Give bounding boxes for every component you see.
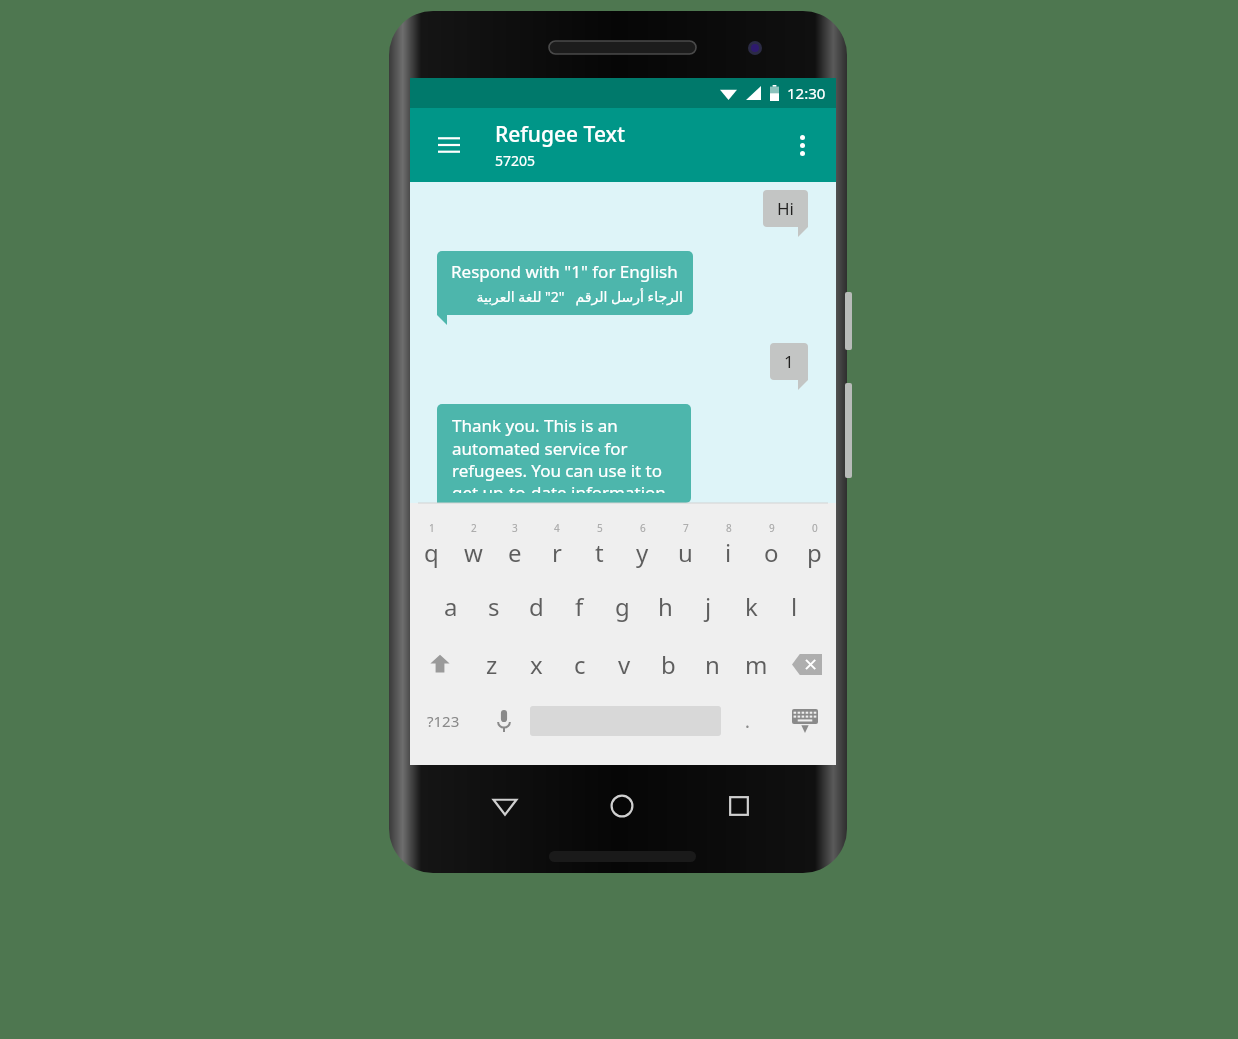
button[interactable]: Respond with "1" for English [437,251,693,325]
staticText: 0 [812,521,818,535]
button[interactable]: 6 [621,521,664,569]
staticText: r [552,536,562,569]
button[interactable]: k [730,583,773,629]
staticText: h [658,590,673,623]
staticText: v [618,648,631,681]
staticText: Thank you. This is an automated service … [452,414,681,493]
staticText: Hi [777,197,794,220]
button[interactable]: 0 [793,521,836,569]
button[interactable]: 9 [750,521,793,569]
button[interactable]: 1 [770,343,808,390]
staticText: 8 [726,521,732,535]
staticText: x [530,648,543,681]
staticText: 1 [429,521,435,535]
button[interactable]: Delete [778,641,836,687]
button[interactable]: 2 [452,521,494,569]
staticText: 2 [471,521,477,535]
staticText: a [444,590,458,623]
button[interactable]: c [558,641,602,687]
staticText: d [529,590,544,623]
staticText: Respond with "1" for English [451,260,678,283]
staticText: 6 [640,521,646,535]
button[interactable]: x [514,641,558,687]
staticText: t [595,536,604,569]
staticText: c [574,648,586,681]
staticText: z [486,648,498,681]
staticText: 1 [784,350,794,373]
staticText: m [745,648,768,681]
button[interactable]: Open navigation menu [428,124,470,166]
staticText: 4 [554,521,560,535]
staticText: e [508,536,522,569]
staticText: g [615,590,630,623]
staticText: p [807,536,822,569]
button[interactable]: Back [480,781,530,831]
button[interactable]: d [515,583,558,629]
button[interactable]: Home [597,781,647,831]
staticText: 57205 [495,151,536,170]
button[interactable]: Recent apps [714,781,764,831]
button[interactable]: 4 [536,521,578,569]
staticText: s [488,590,500,623]
staticText: ?123 [427,711,460,731]
button[interactable]: More options [782,125,822,165]
staticText: 3 [512,521,518,535]
staticText: الرجاء أرسل الرقم "2" للغة العربية [451,287,683,306]
button[interactable]: s [472,583,515,629]
staticText: 7 [683,521,689,535]
staticText: l [791,590,798,623]
staticText: . [745,709,750,734]
button[interactable]: 3 [494,521,536,569]
staticText: u [678,536,693,569]
button[interactable]: ?123 [410,697,477,745]
staticText: b [661,648,676,681]
button[interactable]: 8 [707,521,750,569]
button[interactable]: l [773,583,816,629]
staticText: w [464,536,483,569]
button[interactable]: Hi [763,190,808,237]
button[interactable]: m [734,641,778,687]
button[interactable]: Hide keyboard [774,697,836,745]
button[interactable]: z [469,641,514,687]
staticText: q [424,536,439,569]
button[interactable]: . [721,697,774,745]
button[interactable]: g [601,583,644,629]
staticText: 12:30 [787,83,826,103]
button[interactable]: Shift [410,641,469,687]
staticText: i [725,536,732,569]
staticText: Refugee Text [495,120,625,149]
staticText: 9 [769,521,775,535]
button[interactable]: n [690,641,734,687]
button[interactable]: 5 [578,521,621,569]
button[interactable]: j [687,583,730,629]
staticText: o [764,536,779,569]
staticText: j [705,590,712,623]
staticText: f [575,590,584,623]
button[interactable]: 1 [410,521,452,569]
staticText: k [745,590,758,623]
staticText: 5 [597,521,603,535]
button[interactable]: Voice input [477,697,530,745]
staticText: n [705,648,720,681]
button[interactable]: 7 [664,521,707,569]
button[interactable]: a [430,583,472,629]
button[interactable]: h [644,583,687,629]
button[interactable]: Thank you. This is an automated service … [437,404,691,503]
button[interactable]: b [646,641,690,687]
button[interactable]: v [602,641,646,687]
button[interactable]: f [558,583,601,629]
staticText: y [636,536,649,569]
